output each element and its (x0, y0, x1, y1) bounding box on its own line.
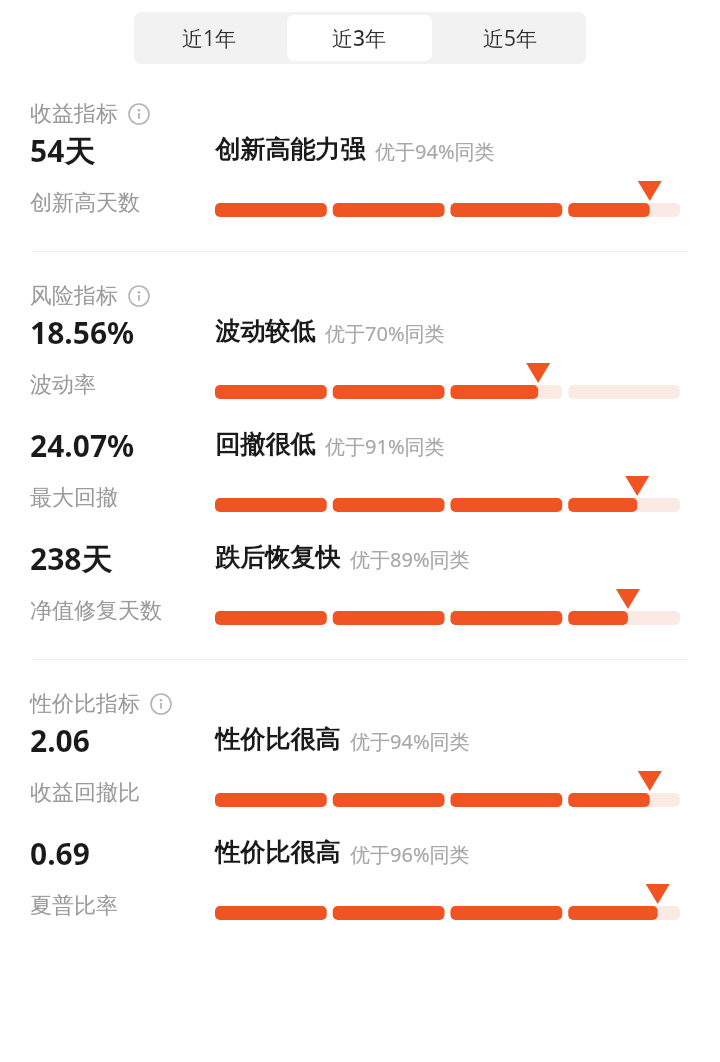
button[interactable]: 2.06 (0, 718, 720, 807)
button[interactable]: 0.69 (0, 831, 720, 920)
staticText: 风险指标 (30, 282, 118, 310)
other: 说明 (128, 103, 150, 125)
staticText: 收益回撤比 (30, 779, 140, 807)
staticText: 优于70%同类 (325, 320, 445, 347)
staticText: 回撤很低 (215, 429, 315, 460)
button[interactable]: 24.07% (0, 423, 720, 512)
button[interactable]: 近1年 (137, 15, 281, 61)
staticText: 性价比很高 (215, 837, 340, 868)
staticText: 优于94%同类 (350, 728, 470, 755)
staticText: 24.07% (30, 425, 135, 466)
other: 说明 (150, 693, 172, 715)
staticText: 创新高天数 (30, 189, 140, 217)
other: 说明 (128, 285, 150, 307)
staticText: 性价比很高 (215, 724, 340, 755)
staticText: 夏普比率 (30, 892, 118, 920)
button[interactable]: 18.56% (0, 310, 720, 399)
staticText: 优于89%同类 (350, 546, 470, 573)
button[interactable]: 近3年 (287, 15, 432, 61)
staticText: 波动率 (30, 371, 96, 399)
staticText: 优于94%同类 (375, 138, 495, 165)
staticText: 波动较低 (215, 316, 315, 347)
staticText: 创新高能力强 (215, 134, 365, 165)
staticText: 0.69 (30, 833, 90, 874)
staticText: 优于91%同类 (325, 433, 445, 460)
staticText: 净值修复天数 (30, 597, 162, 625)
staticText: 跌后恢复快 (215, 542, 340, 573)
button[interactable]: 近5年 (438, 15, 583, 61)
staticText: 18.56% (30, 312, 135, 353)
staticText: 性价比指标 (30, 690, 140, 718)
button[interactable]: 性价比指标 (30, 690, 172, 718)
staticText: 近1年 (182, 24, 237, 53)
button[interactable]: 238天 (0, 536, 720, 625)
staticText: 2.06 (30, 720, 90, 761)
staticText: 收益指标 (30, 100, 118, 128)
staticText: 54天 (30, 130, 95, 171)
button[interactable]: 54天 (0, 128, 720, 217)
staticText: 最大回撤 (30, 484, 118, 512)
staticText: 近5年 (483, 24, 538, 53)
staticText: 近3年 (332, 24, 387, 53)
button[interactable]: 风险指标 (30, 282, 150, 310)
button[interactable]: 收益指标 (30, 100, 150, 128)
staticText: 238天 (30, 538, 112, 579)
staticText: 优于96%同类 (350, 841, 470, 868)
